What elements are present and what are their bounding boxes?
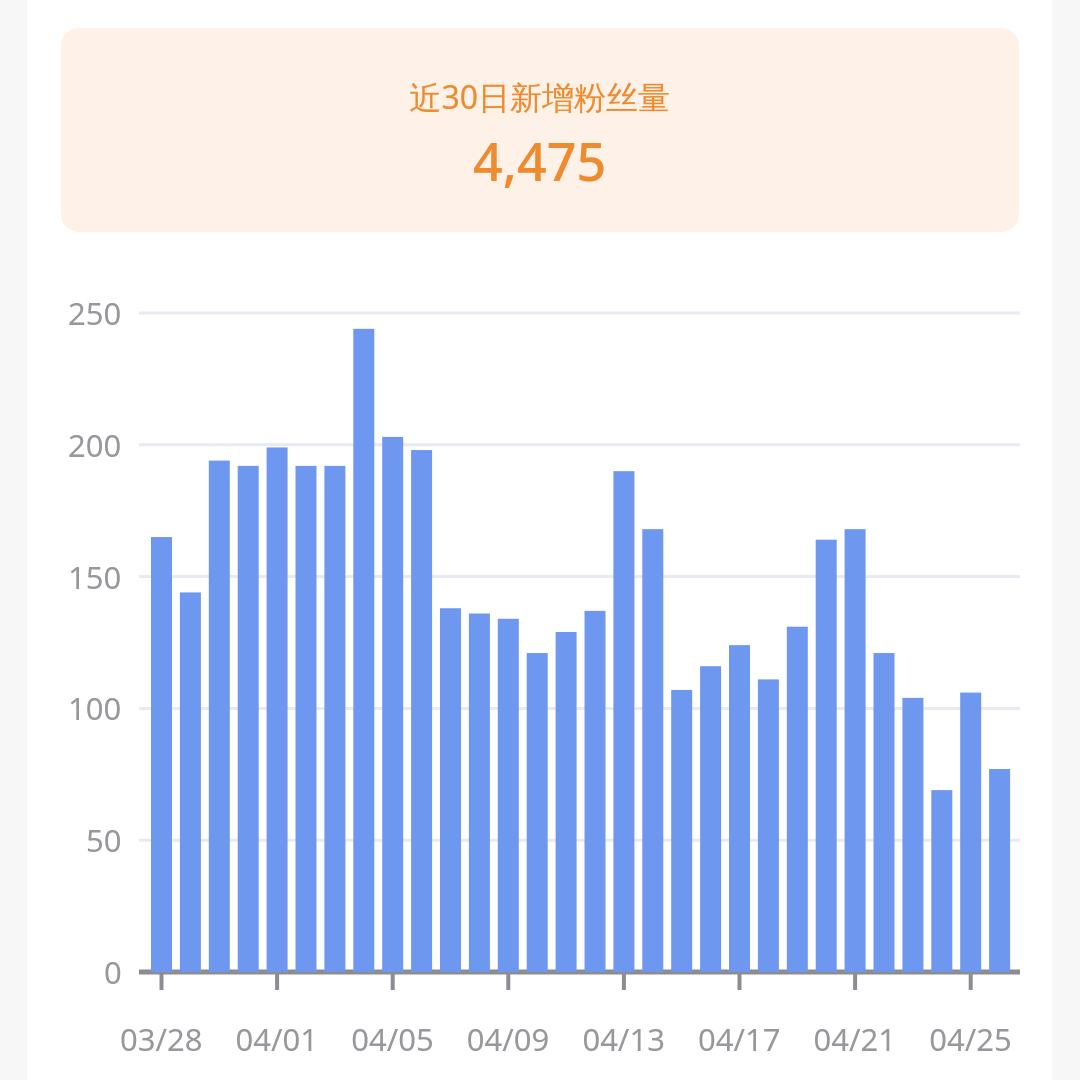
button[interactable]: 近30日新增粉丝量 4,475 [0, 0, 1080, 1080]
